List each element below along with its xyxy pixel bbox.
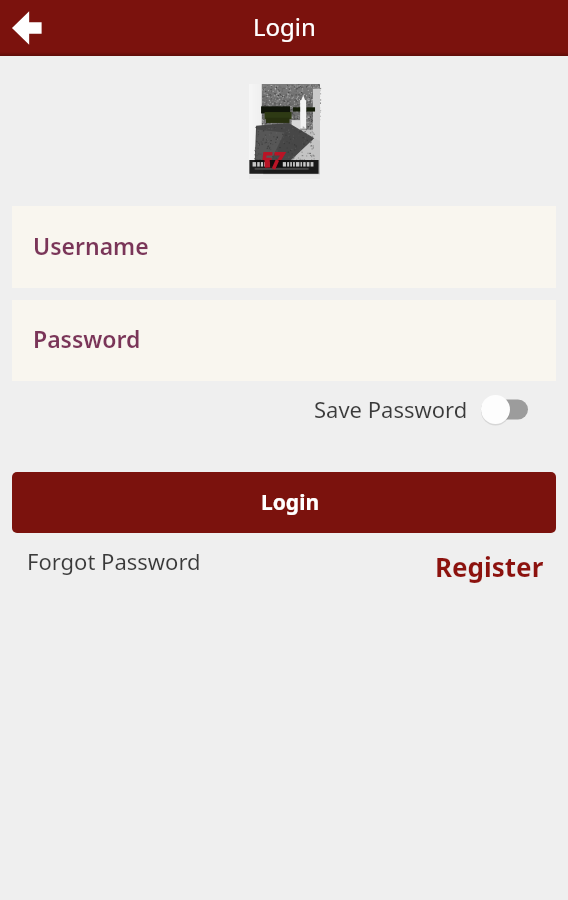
staticText: Password bbox=[33, 323, 141, 354]
button[interactable]: Password bbox=[12, 300, 556, 381]
button[interactable]: Username bbox=[12, 206, 556, 288]
button[interactable]: Back bbox=[0, 0, 54, 56]
button[interactable]: Login bbox=[12, 472, 556, 533]
button[interactable]: Save Password bbox=[314, 381, 528, 437]
button[interactable]: Forgot Password bbox=[0, 533, 217, 595]
staticText: Register bbox=[435, 549, 544, 584]
button[interactable]: Register bbox=[419, 533, 568, 595]
staticText: Save Password bbox=[314, 394, 468, 424]
staticText: Login bbox=[261, 488, 320, 517]
staticText: Username bbox=[33, 230, 149, 261]
staticText: Forgot Password bbox=[27, 546, 201, 576]
staticText: Login bbox=[253, 10, 316, 43]
